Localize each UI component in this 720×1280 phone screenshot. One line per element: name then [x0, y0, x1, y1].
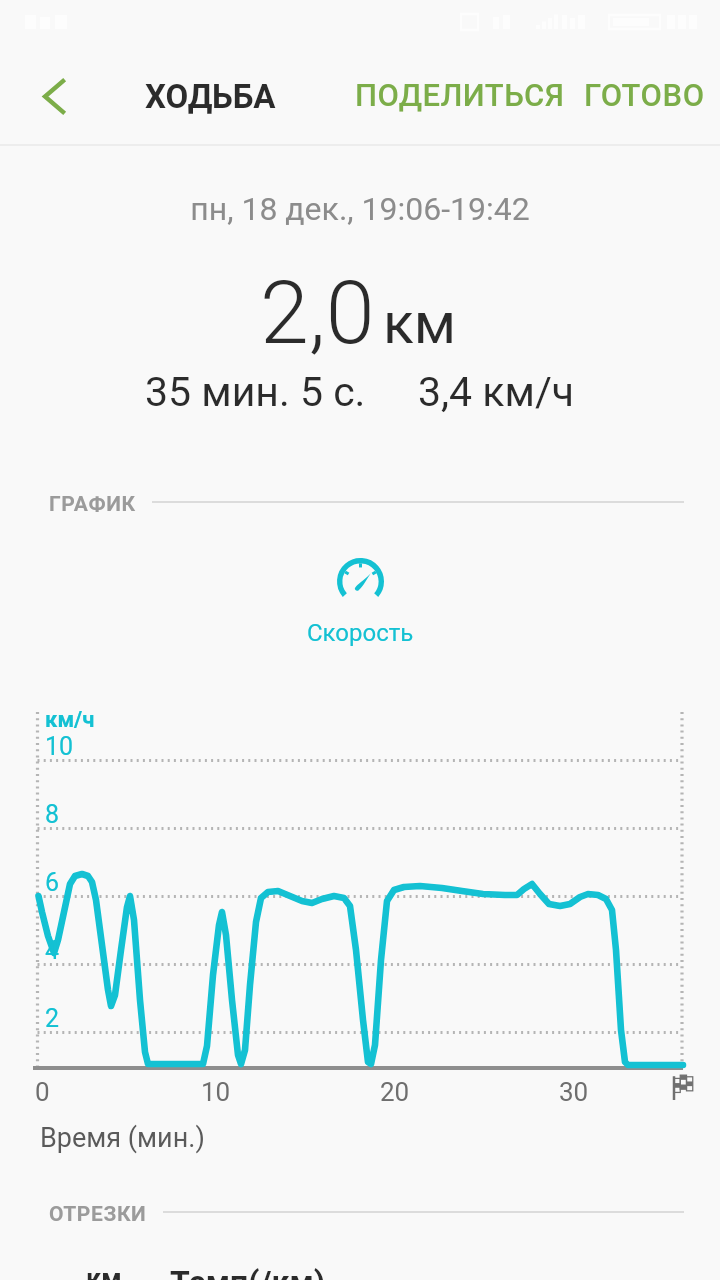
staticText: 10	[201, 1077, 231, 1107]
staticText: км	[86, 1263, 122, 1280]
staticText: Скорость	[307, 619, 414, 647]
staticText: ОТРЕЗКИ	[49, 1202, 147, 1227]
staticText: пн, 18 дек., 19:06-19:42	[0, 190, 720, 228]
staticText: 2,0	[260, 261, 375, 364]
button[interactable]: Скорость	[0, 558, 720, 647]
staticText: 2	[45, 1004, 60, 1033]
staticText: ХОДЬБА	[145, 77, 276, 116]
staticText: 30	[559, 1077, 589, 1107]
staticText: 8	[45, 800, 60, 829]
staticText: ПОДЕЛИТЬСЯ	[355, 77, 565, 113]
staticText: 4	[45, 936, 60, 965]
staticText: км/ч	[45, 707, 95, 733]
staticText: 10	[45, 732, 74, 761]
staticText: 35 мин. 5 с.	[145, 368, 366, 416]
button[interactable]: Back	[0, 48, 108, 144]
staticText: Время (мин.)	[40, 1122, 205, 1154]
staticText: 20	[380, 1077, 410, 1107]
staticText: ГРАФИК	[49, 492, 136, 517]
button[interactable]: ГОТОВО	[580, 67, 709, 123]
other: Finish	[669, 1073, 694, 1100]
button[interactable]: ПОДЕЛИТЬСЯ	[351, 67, 569, 123]
staticText: Темп(/км)	[170, 1263, 325, 1280]
staticText: км	[383, 290, 457, 357]
staticText: ГОТОВО	[584, 77, 705, 113]
staticText: 3,4 км/ч	[418, 368, 575, 416]
staticText: 6	[45, 868, 60, 897]
staticText: 0	[35, 1077, 50, 1107]
